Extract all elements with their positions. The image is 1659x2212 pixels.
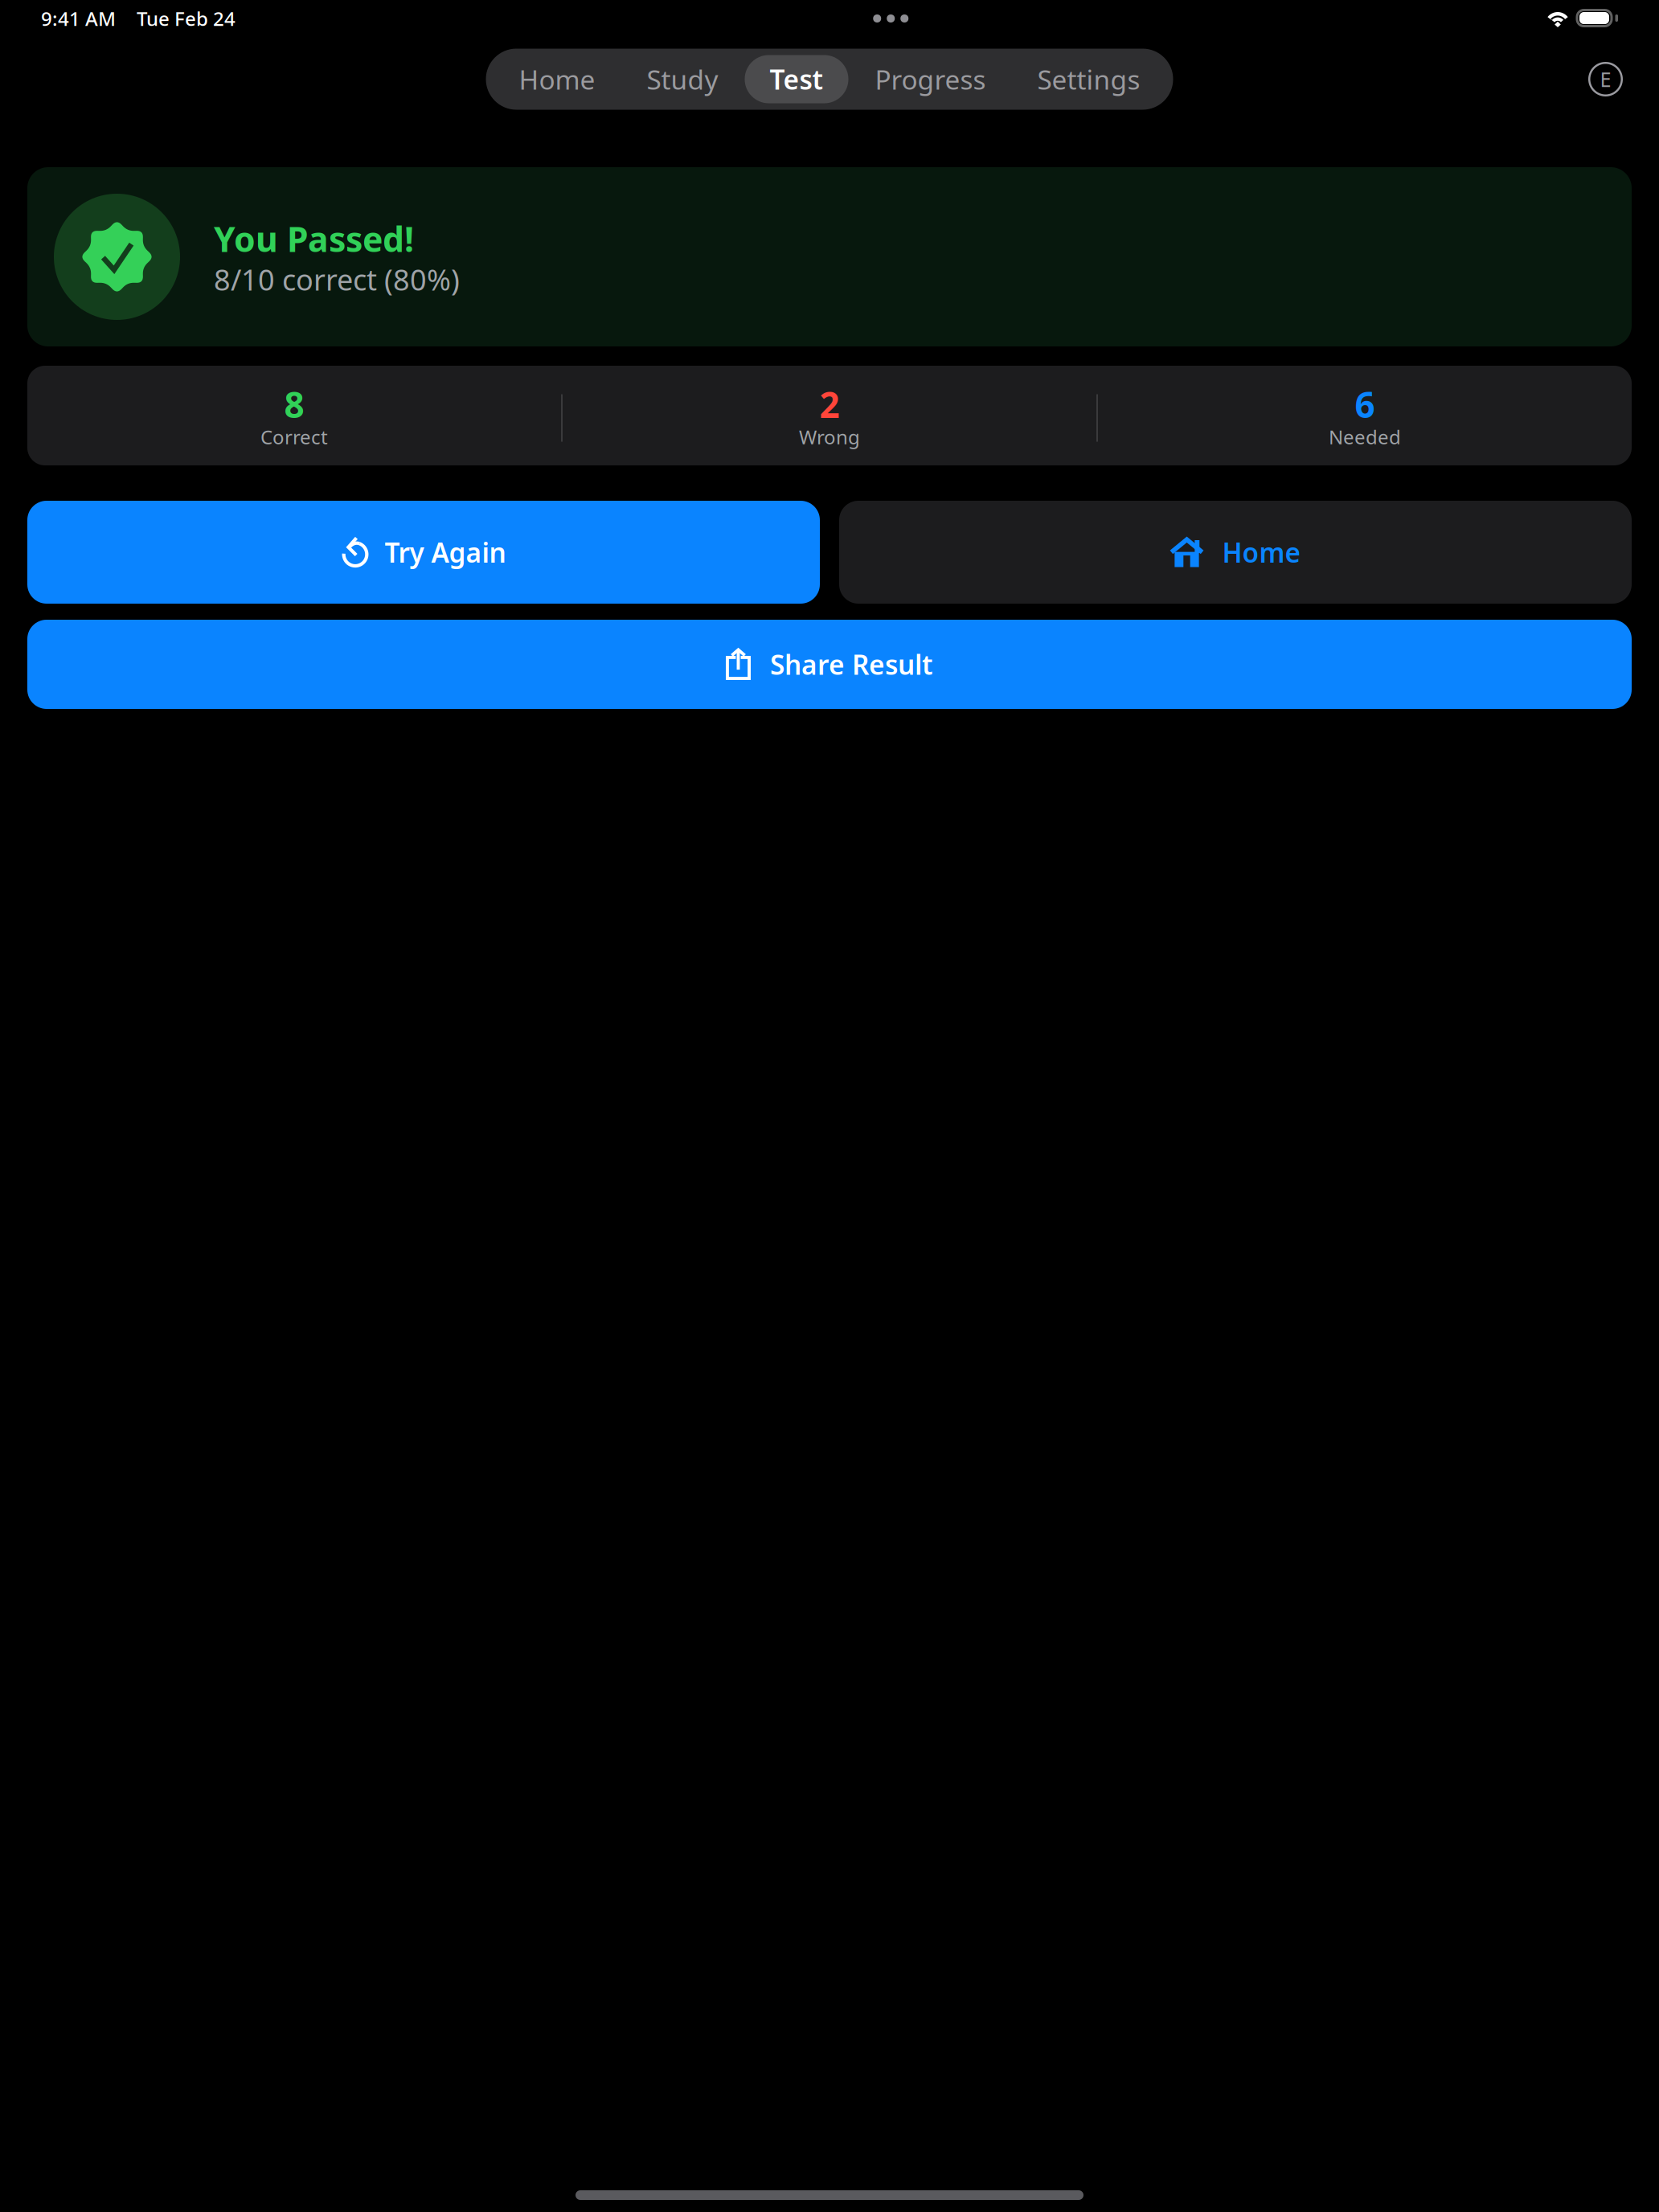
staticText: Try Again (385, 534, 506, 570)
staticText: Tue Feb 24 (137, 6, 236, 31)
staticText: Test (770, 61, 823, 97)
staticText: You Passed! (214, 216, 414, 262)
staticText: Correct (260, 424, 328, 450)
button[interactable]: Home (494, 55, 620, 103)
staticText: 8 (284, 381, 304, 428)
staticText: Home (1222, 534, 1301, 570)
staticText: 2 (819, 381, 840, 428)
staticText: Study (647, 61, 718, 97)
button[interactable]: Progress (850, 55, 1011, 103)
staticText: 6 (1355, 381, 1375, 428)
button[interactable]: Share Result (27, 620, 1632, 709)
button[interactable]: Study (622, 55, 743, 103)
staticText: Share Result (770, 647, 933, 682)
button[interactable]: Account (1588, 62, 1623, 96)
staticText: 9:41 AM (41, 6, 116, 31)
staticText: Home (519, 61, 595, 97)
button[interactable]: Test (745, 55, 848, 103)
staticText: E (1600, 66, 1611, 93)
staticText: Wrong (799, 424, 860, 450)
staticText: Settings (1037, 61, 1140, 97)
button[interactable]: Try Again (27, 501, 820, 604)
staticText: Needed (1329, 424, 1401, 450)
staticText: 8/10 correct (80%) (214, 260, 460, 299)
button[interactable]: Home (839, 501, 1632, 604)
staticText: Progress (875, 61, 986, 97)
button[interactable]: Settings (1012, 55, 1165, 103)
